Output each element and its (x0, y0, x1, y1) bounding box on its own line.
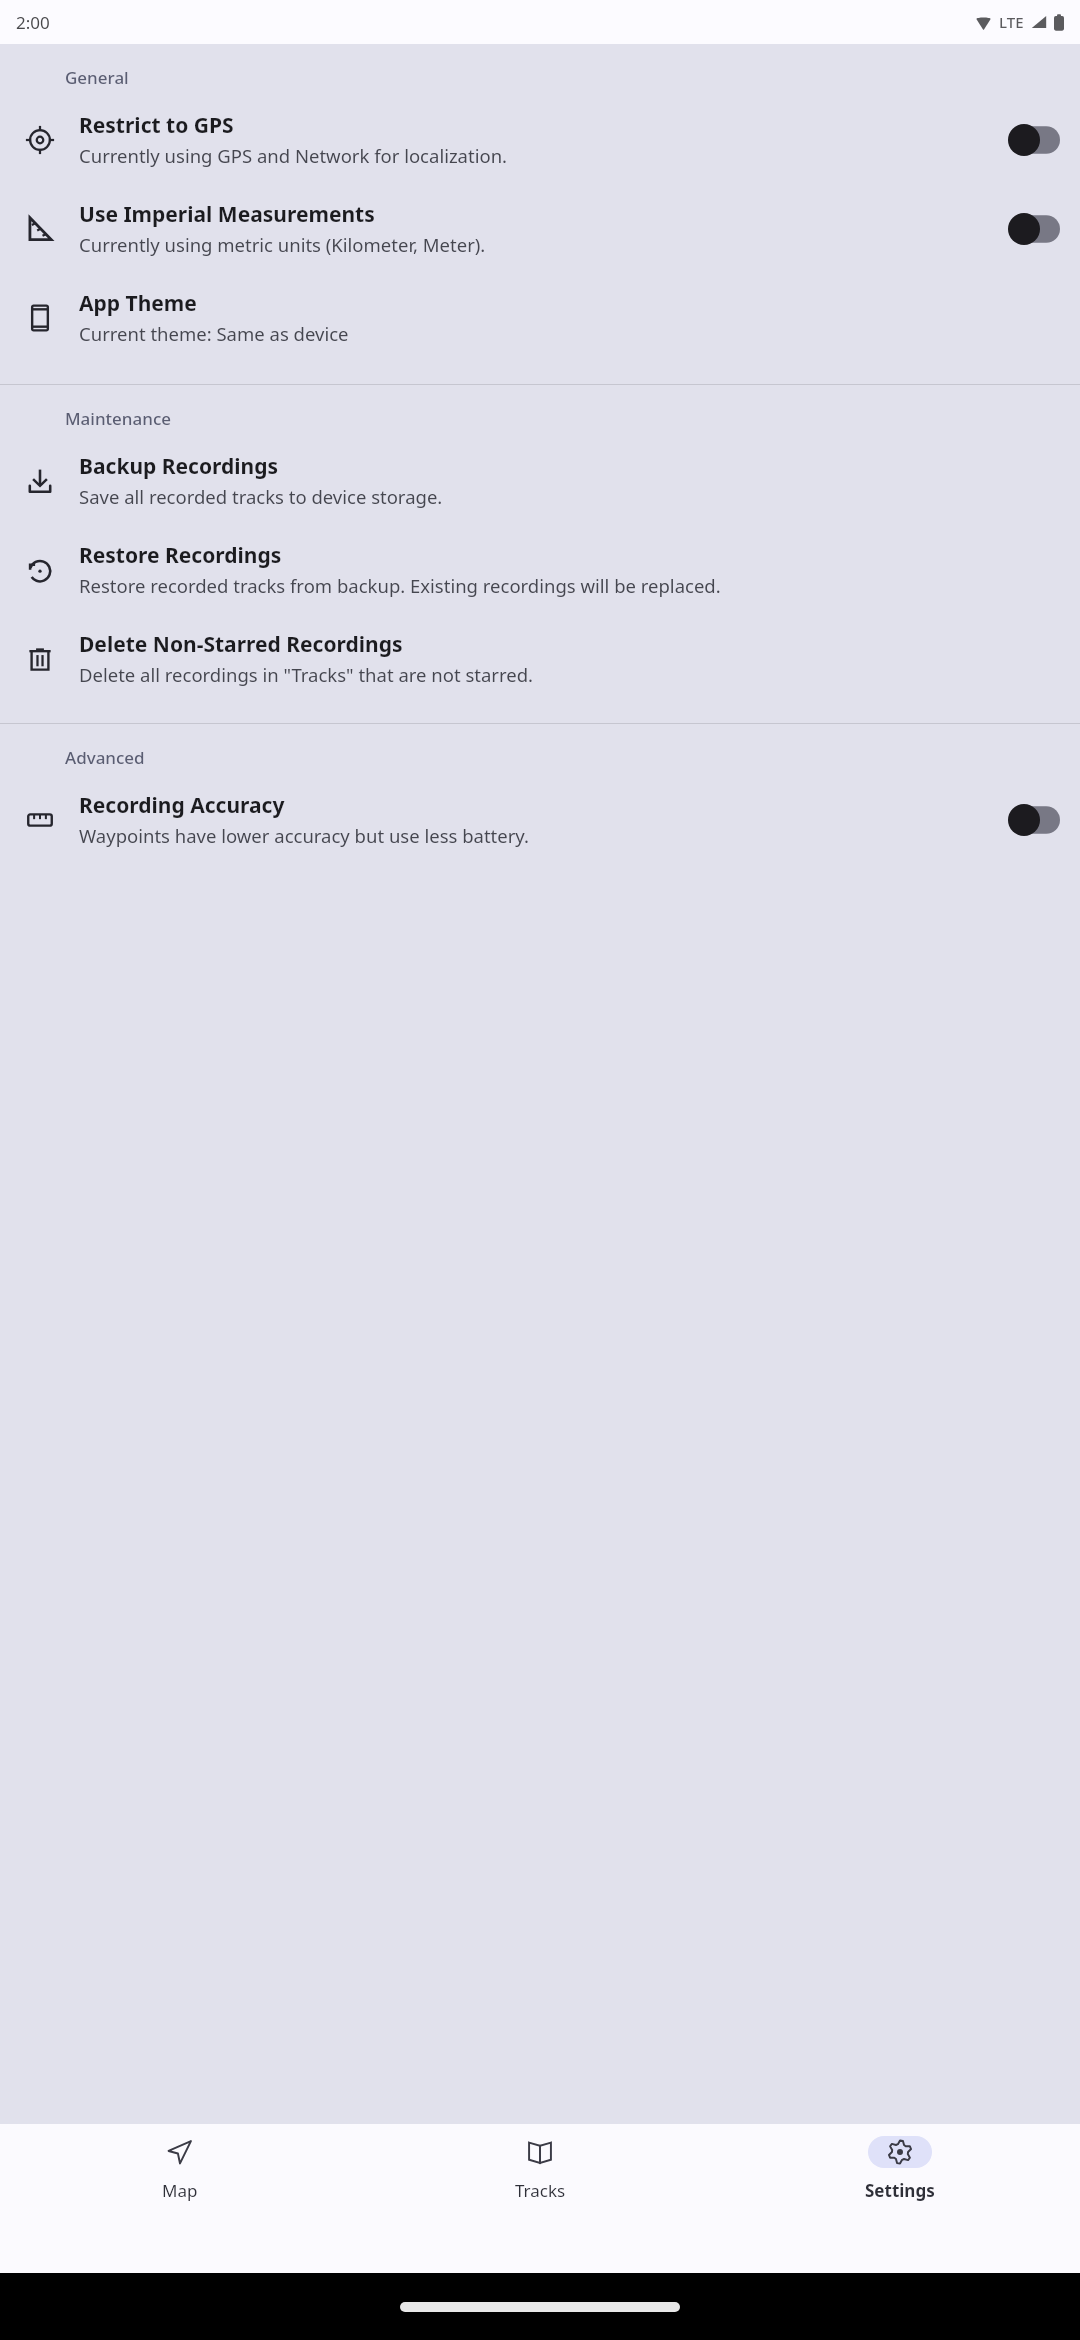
button[interactable]: Restrict to GPS (0, 95, 1080, 184)
staticText: Restore recorded tracks from backup. Exi… (79, 573, 721, 598)
staticText: Advanced (65, 746, 145, 769)
staticText: Use Imperial Measurements (79, 200, 375, 229)
staticText: 2:00 (16, 11, 50, 34)
button[interactable]: Toggle (1008, 124, 1060, 156)
button[interactable]: App Theme (0, 273, 1080, 362)
staticText: Current theme: Same as device (79, 321, 349, 346)
staticText: Tracks (515, 2179, 566, 2202)
button[interactable]: Toggle (1008, 213, 1060, 245)
staticText: LTE (999, 12, 1024, 32)
staticText: Maintenance (65, 407, 171, 430)
staticText: Currently using metric units (Kilometer,… (79, 232, 486, 257)
button[interactable]: Toggle (1008, 804, 1060, 836)
staticText: Settings (865, 2179, 935, 2202)
button[interactable]: Tracks (360, 2124, 720, 2273)
staticText: Map (162, 2179, 198, 2202)
other: Tracks (527, 2139, 553, 2165)
staticText: Recording Accuracy (79, 791, 285, 820)
staticText: Delete all recordings in "Tracks" that a… (79, 662, 533, 687)
button[interactable]: Map (0, 2124, 360, 2273)
staticText: App Theme (79, 289, 197, 318)
staticText: Delete Non-Starred Recordings (79, 630, 403, 659)
button[interactable]: Use Imperial Measurements (0, 184, 1080, 273)
staticText: Restrict to GPS (79, 111, 234, 140)
button[interactable]: Backup Recordings (0, 436, 1080, 525)
button[interactable]: Delete Non-Starred Recordings (0, 614, 1080, 703)
button[interactable]: Restore Recordings (0, 525, 1080, 614)
staticText: Restore Recordings (79, 541, 282, 570)
button[interactable]: Recording Accuracy (0, 775, 1080, 864)
staticText: General (65, 66, 129, 89)
staticText: Save all recorded tracks to device stora… (79, 484, 443, 509)
other: Map (167, 2139, 193, 2165)
staticText: Currently using GPS and Network for loca… (79, 143, 508, 168)
other: Settings (887, 2139, 913, 2165)
staticText: Waypoints have lower accuracy but use le… (79, 823, 530, 848)
button[interactable]: Settings (720, 2124, 1080, 2273)
staticText: Backup Recordings (79, 452, 279, 481)
